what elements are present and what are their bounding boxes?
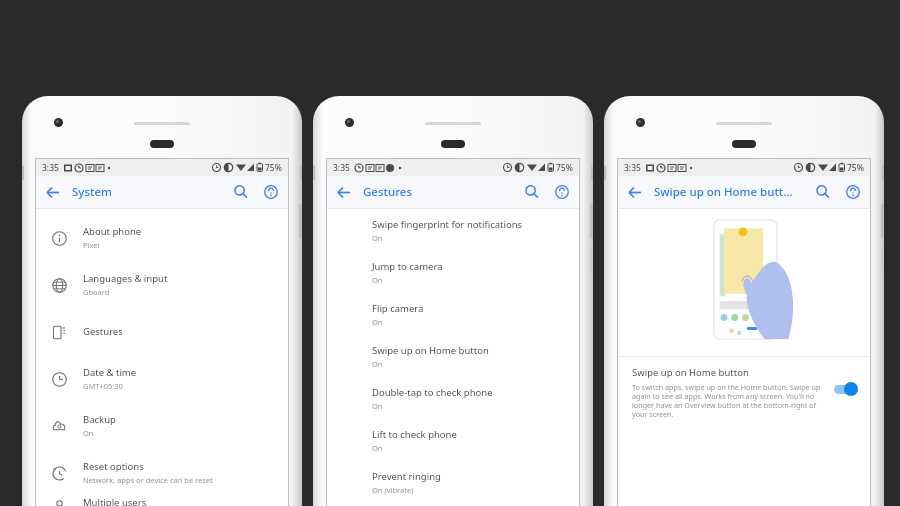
staticText: On (372, 275, 383, 285)
button[interactable]: Search (226, 177, 256, 207)
staticText: 75% (556, 162, 573, 174)
staticText: 3:35 (624, 162, 641, 174)
staticText: Swipe up on Home butt… (654, 184, 793, 200)
staticText: Flip camera (372, 302, 424, 315)
button[interactable]: Backup (36, 402, 288, 449)
staticText: Date & time (83, 366, 137, 379)
button[interactable]: Help (838, 177, 868, 207)
button[interactable]: Help (547, 177, 577, 207)
button[interactable]: Search (808, 177, 838, 207)
staticText: Languages & input (83, 272, 168, 285)
staticText: Jump to camera (372, 260, 443, 273)
button[interactable]: Back (618, 176, 650, 208)
button[interactable]: Reset options (36, 449, 288, 496)
staticText: About phone (83, 225, 142, 238)
staticText: Lift to check phone (372, 428, 457, 441)
staticText: On (372, 359, 383, 369)
staticText: On (372, 401, 383, 411)
staticText: Gboard (83, 287, 110, 297)
staticText: Network, apps or device can be reset (83, 475, 213, 485)
staticText: Gestures (363, 184, 412, 200)
button[interactable]: Lift to check phone (327, 428, 579, 470)
button[interactable]: Swipe up on Home button toggle (832, 380, 862, 398)
staticText: To switch apps, swipe up on the Home but… (632, 382, 826, 420)
button[interactable]: Prevent ringing (327, 470, 579, 506)
staticText: System (72, 184, 112, 200)
staticText: GMT+05:30 (83, 381, 123, 391)
staticText: Prevent ringing (372, 470, 441, 483)
staticText: 75% (265, 162, 282, 174)
staticText: On (83, 428, 94, 438)
button[interactable]: Swipe up on Home button (618, 357, 870, 420)
button[interactable]: Multiple users (36, 496, 288, 506)
button[interactable]: About phone (36, 214, 288, 261)
staticText: Multiple users (83, 496, 147, 506)
button[interactable]: Back (327, 176, 359, 208)
staticText: On (vibrate) (372, 485, 414, 495)
button[interactable]: Languages & input (36, 261, 288, 308)
button[interactable]: Double-tap to check phone (327, 386, 579, 428)
staticText: Backup (83, 413, 116, 426)
staticText: Pixel (83, 240, 100, 250)
staticText: Gestures (83, 325, 123, 338)
staticText: 75% (847, 162, 864, 174)
staticText: Reset options (83, 460, 144, 473)
staticText: Swipe fingerprint for notifications (372, 218, 523, 231)
button[interactable]: Flip camera (327, 302, 579, 344)
button[interactable]: Help (256, 177, 286, 207)
staticText: On (372, 233, 383, 243)
staticText: 3:35 (333, 162, 350, 174)
staticText: On (372, 317, 383, 327)
button[interactable]: Swipe up on Home button (327, 344, 579, 386)
staticText: 3:35 (42, 162, 59, 174)
staticText: On (372, 443, 383, 453)
button[interactable]: Swipe fingerprint for notifications (327, 218, 579, 260)
button[interactable]: Back (36, 176, 68, 208)
button[interactable]: Jump to camera (327, 260, 579, 302)
staticText: Swipe up on Home button (632, 366, 749, 379)
button[interactable]: Search (517, 177, 547, 207)
button[interactable]: Gestures (36, 308, 288, 355)
staticText: Double-tap to check phone (372, 386, 493, 399)
staticText: Swipe up on Home button (372, 344, 489, 357)
button[interactable]: Date & time (36, 355, 288, 402)
